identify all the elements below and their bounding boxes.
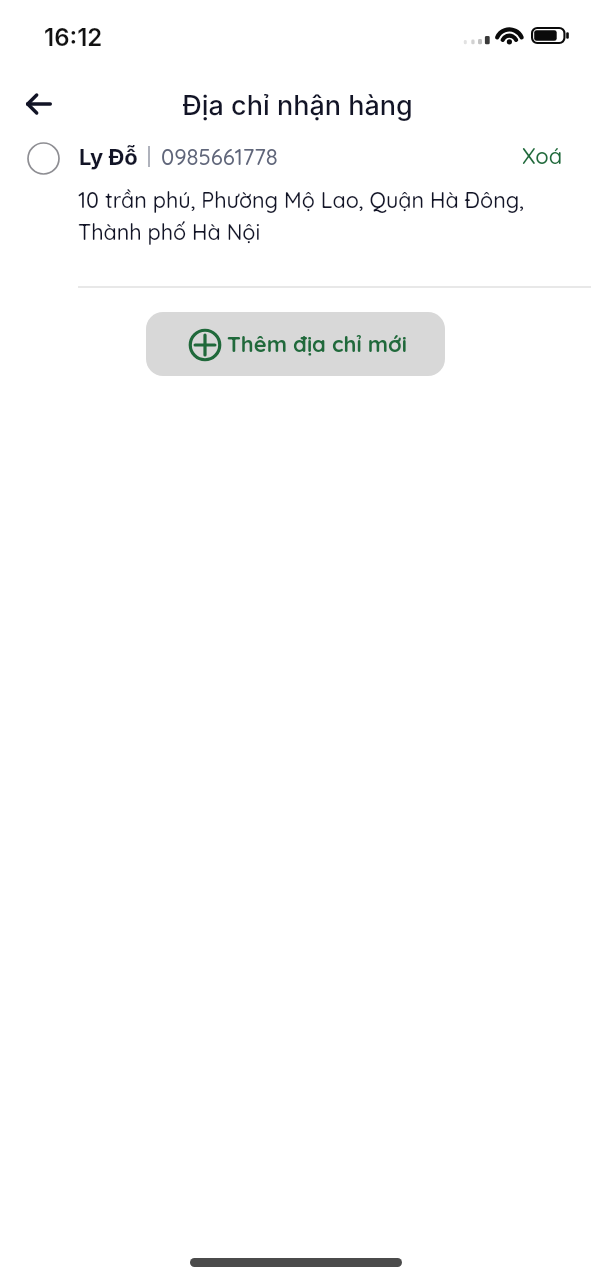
staticText: Thêm địa chỉ mới [227,330,407,358]
staticText: 0985661778 [161,143,278,171]
staticText: Xoá [522,142,563,170]
button[interactable]: Back [13,78,65,130]
staticText: Địa chỉ nhận hàng [182,88,413,122]
button[interactable]: Thêm địa chỉ mới [146,312,445,376]
button[interactable]: Xoá [510,138,574,174]
staticText: Ly Đỗ [79,143,138,171]
button[interactable]: Ly Đỗ [0,0,591,265]
staticText: 16:12 [44,24,103,52]
staticText: 10 trần phú, Phường Mộ Lao, Quận Hà Đông… [78,182,538,246]
